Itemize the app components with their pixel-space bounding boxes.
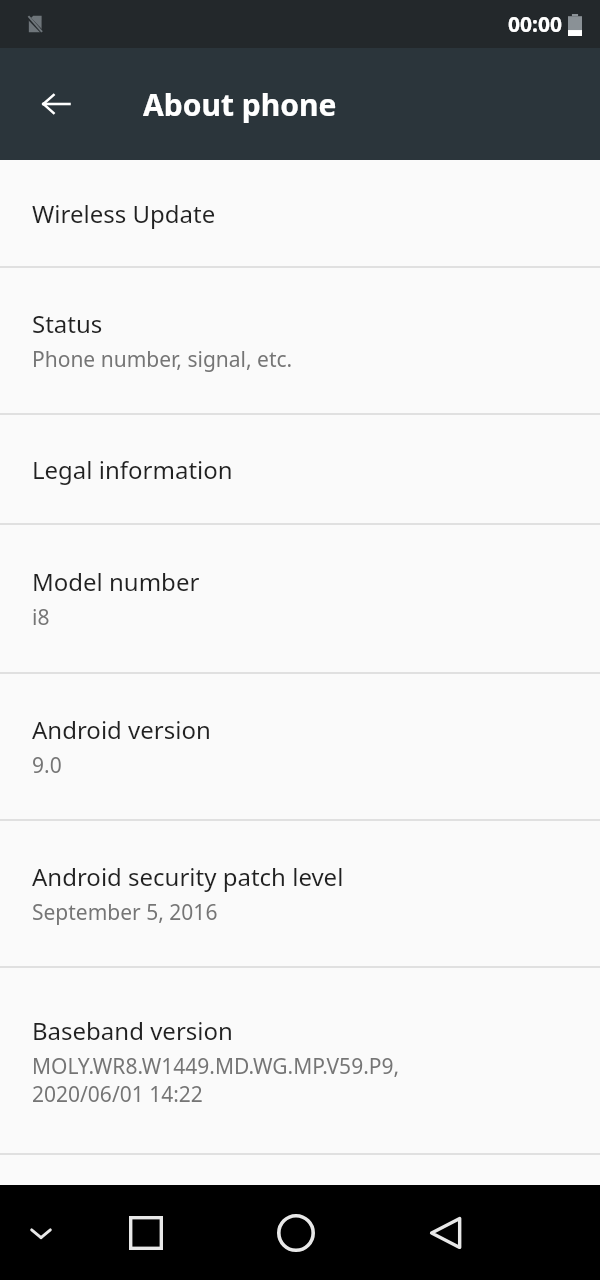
staticText: Android version (32, 713, 211, 746)
button[interactable]: Android version (0, 674, 600, 819)
staticText: Legal information (32, 453, 233, 486)
staticText: 9.0 (32, 751, 62, 780)
staticText: Status (32, 307, 103, 340)
staticText: Android security patch level (32, 860, 344, 893)
button[interactable]: Recent apps (116, 1203, 176, 1263)
staticText: i8 (32, 603, 50, 632)
staticText: Phone number, signal, etc. (32, 345, 293, 374)
staticText: MOLY.WR8.W1449.MD.WG.MP.V59.P9, 2020/06/… (32, 1052, 400, 1108)
button[interactable]: Home (266, 1203, 326, 1263)
button[interactable]: Android security patch level (0, 821, 600, 966)
button[interactable]: Hide keyboard (11, 1203, 71, 1263)
button[interactable]: Model number (0, 525, 600, 672)
staticText: Baseband version (32, 1014, 233, 1047)
staticText: Wireless Update (32, 197, 216, 230)
staticText: 00:00 (508, 10, 562, 39)
button[interactable]: Back (26, 74, 86, 134)
staticText: About phone (143, 84, 337, 125)
button[interactable]: Wireless Update (0, 160, 600, 266)
button[interactable]: Legal information (0, 415, 600, 523)
button[interactable]: Status (0, 268, 600, 413)
button[interactable]: Baseband version (0, 968, 600, 1153)
button[interactable]: Back (416, 1203, 476, 1263)
staticText: Model number (32, 565, 200, 598)
staticText: September 5, 2016 (32, 898, 218, 927)
